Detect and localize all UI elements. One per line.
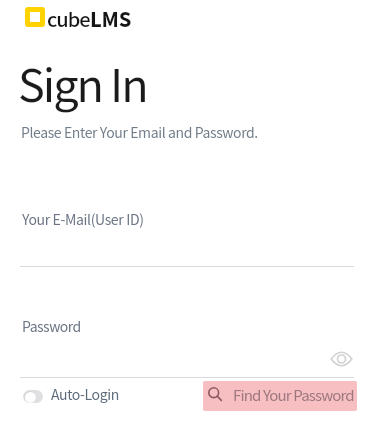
staticText: Find Your Password: [233, 384, 354, 406]
button[interactable]: [330, 351, 353, 367]
staticText: cube: [47, 4, 90, 33]
button[interactable]: Auto-Login: [22, 383, 122, 407]
button[interactable]: cube: [25, 7, 129, 39]
staticText: Password: [22, 316, 81, 336]
button[interactable]: Find Your Password: [203, 381, 357, 411]
staticText: Sign In: [18, 50, 147, 115]
staticText: Please Enter Your Email and Password.: [21, 122, 258, 142]
staticText: LMS: [90, 4, 132, 33]
staticText: Your E-Mail(User ID): [22, 209, 144, 229]
staticText: Auto-Login: [51, 384, 119, 404]
